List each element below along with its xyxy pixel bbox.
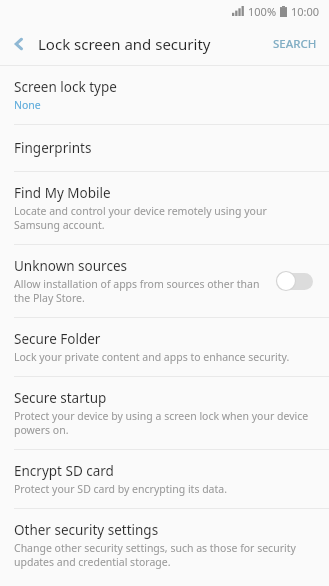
button[interactable]: Unknown sources [0, 245, 329, 317]
button[interactable]: Fingerprints [0, 125, 329, 171]
staticText: Lock your private content and apps to en… [14, 350, 290, 364]
staticText: Locate and control your device remotely … [14, 204, 315, 232]
button[interactable]: Back [0, 22, 38, 65]
staticText: Allow installation of apps from sources … [14, 277, 265, 305]
staticText: Secure startup [14, 389, 107, 407]
staticText: Lock screen and security [38, 34, 267, 54]
staticText: Find My Mobile [14, 184, 111, 202]
button[interactable]: Find My Mobile [0, 172, 329, 244]
staticText: Other security settings [14, 521, 159, 539]
staticText: Secure Folder [14, 330, 101, 348]
staticText: Screen lock type [14, 78, 117, 96]
button[interactable]: Unknown sources toggle [275, 270, 315, 292]
staticText: Protect your device by using a screen lo… [14, 409, 315, 437]
staticText: Change other security settings, such as … [14, 541, 315, 569]
button[interactable]: Secure startup [0, 377, 329, 449]
staticText: Encrypt SD card [14, 462, 114, 480]
button[interactable]: Secure Folder [0, 318, 329, 376]
staticText: 100% [248, 4, 277, 19]
staticText: SEARCH [273, 36, 317, 52]
button[interactable]: Screen lock type [0, 66, 329, 124]
staticText: 10:00 [291, 4, 320, 19]
staticText: None [14, 98, 41, 112]
button[interactable]: SEARCH [267, 28, 329, 60]
staticText: Unknown sources [14, 257, 127, 275]
button[interactable]: Encrypt SD card [0, 450, 329, 508]
button[interactable]: Other security settings [0, 509, 329, 581]
staticText: Protect your SD card by encrypting its d… [14, 482, 227, 496]
staticText: Fingerprints [14, 139, 92, 157]
